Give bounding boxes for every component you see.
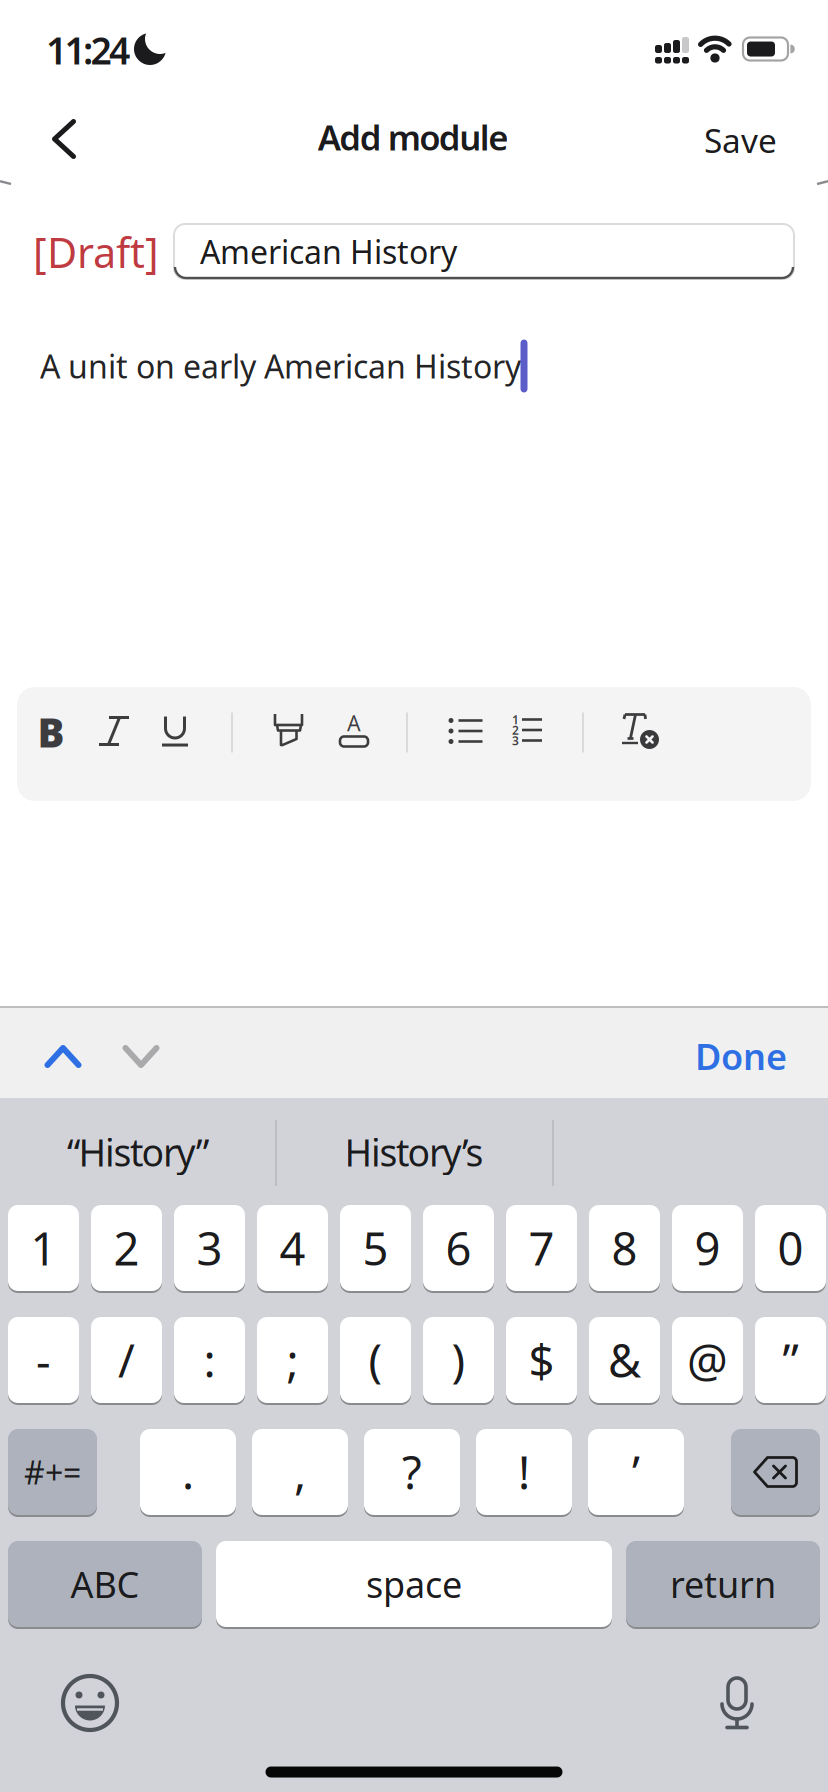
staticText: / [118,1330,135,1390]
staticText: - [36,1330,51,1390]
staticText: History’s [344,1127,483,1177]
button[interactable]: Underline [162,716,192,746]
staticText: A unit on early American History [40,345,521,387]
button[interactable]: 3 [174,1204,245,1292]
staticText: 11:24 [46,25,130,75]
button[interactable]: 2 [91,1204,162,1292]
staticText: ! [518,1442,530,1502]
staticText: 3 [196,1218,222,1278]
button[interactable]: - [8,1316,79,1404]
button[interactable]: Save [657,118,777,162]
staticText: return [670,1560,776,1608]
button[interactable]: 4 [257,1204,328,1292]
staticText: 0 [777,1218,803,1278]
staticText: Save [704,118,777,162]
button[interactable]: ! [476,1428,572,1516]
button[interactable]: @ [672,1316,743,1404]
staticText: 5 [362,1218,388,1278]
staticText: 3 [512,732,519,748]
button[interactable]: 9 [672,1204,743,1292]
button[interactable]: , [252,1428,348,1516]
staticText: 2 [113,1218,139,1278]
staticText: 1 [512,711,519,727]
button[interactable]: space [216,1540,612,1628]
staticText: & [608,1330,641,1390]
staticText: ? [402,1442,422,1502]
staticText: . [182,1442,194,1502]
staticText: A [347,709,361,737]
staticText: Done [695,1032,787,1080]
button[interactable]: Delete [731,1428,820,1516]
staticText: [Draft] [33,225,159,279]
staticText: 1 [30,1218,56,1278]
staticText: 4 [279,1218,305,1278]
button[interactable]: Italic [97,716,131,746]
button[interactable]: return [626,1540,820,1628]
button[interactable]: #+= [8,1428,97,1516]
button[interactable]: . [140,1428,236,1516]
button[interactable]: 8 [589,1204,660,1292]
button[interactable]: ABC [8,1540,202,1628]
staticText: , [294,1442,306,1502]
button[interactable]: ( [340,1316,411,1404]
button[interactable]: Dictate [720,1677,754,1729]
button[interactable]: & [589,1316,660,1404]
button[interactable]: ) [423,1316,494,1404]
staticText: 2 [512,722,519,738]
button[interactable]: ” [755,1316,826,1404]
staticText: space [366,1560,462,1608]
button[interactable]: 5 [340,1204,411,1292]
button[interactable]: History’s [279,1100,549,1204]
button[interactable]: Font color [339,715,369,747]
staticText: ” [782,1330,798,1390]
button[interactable]: “History” [3,1100,273,1204]
button[interactable]: Numbered list [511,714,545,746]
staticText: 7 [528,1218,554,1278]
button[interactable]: Emoji [61,1674,119,1732]
staticText: : [203,1330,215,1390]
staticText: ’ [632,1442,640,1502]
staticText: $ [528,1330,554,1390]
staticText: ; [286,1330,298,1390]
staticText: American History [200,230,457,273]
button[interactable]: Next field [123,1046,159,1068]
button[interactable]: Done [647,1032,787,1080]
button[interactable]: American History [174,224,794,279]
button[interactable]: / [91,1316,162,1404]
staticText: “History” [67,1127,209,1177]
button[interactable]: 0 [755,1204,826,1292]
button[interactable]: 7 [506,1204,577,1292]
button[interactable]: Clear formatting [622,713,660,749]
staticText: @ [687,1330,728,1390]
button[interactable]: ? [364,1428,460,1516]
button[interactable]: : [174,1316,245,1404]
staticText: ABC [70,1560,139,1608]
button[interactable]: Bold [23,704,79,760]
staticText: 9 [694,1218,720,1278]
staticText: 8 [611,1218,637,1278]
staticText: Add module [318,114,508,160]
staticText: ) [451,1330,465,1390]
button[interactable]: Back [51,119,76,159]
button[interactable]: ’ [588,1428,684,1516]
staticText: 6 [445,1218,471,1278]
button[interactable]: Previous field [45,1045,81,1067]
button[interactable]: 6 [423,1204,494,1292]
staticText: #+= [24,1451,81,1493]
button[interactable]: Bulleted list [448,718,482,744]
button[interactable]: Highlight [273,714,305,748]
staticText: B [37,705,64,758]
button[interactable]: 1 [8,1204,79,1292]
button[interactable]: ; [257,1316,328,1404]
staticText: ( [368,1330,382,1390]
button[interactable]: $ [506,1316,577,1404]
